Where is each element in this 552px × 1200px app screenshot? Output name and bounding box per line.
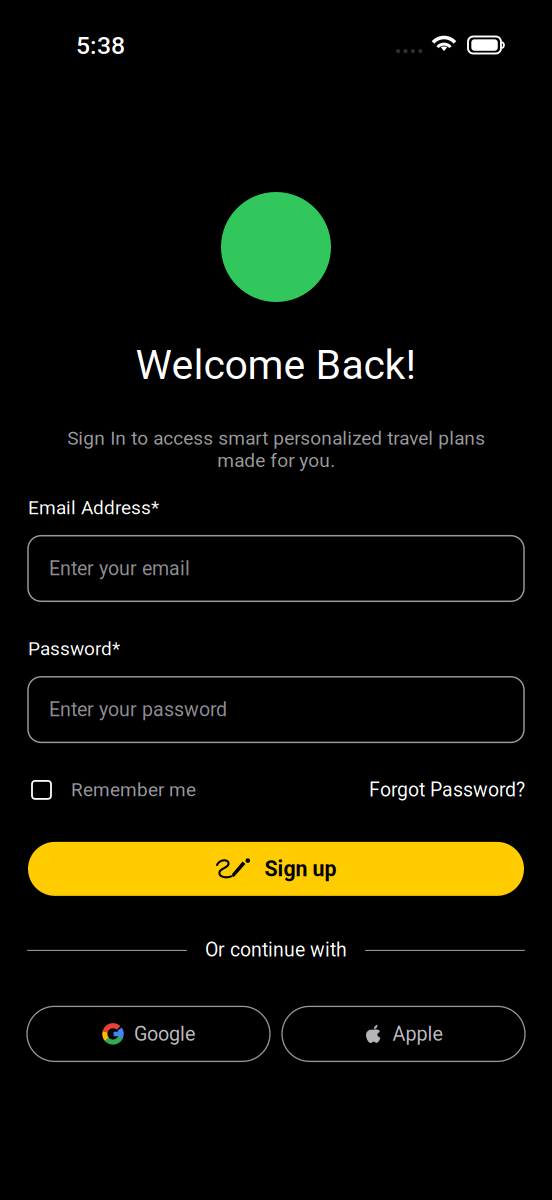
staticText: Password* — [28, 638, 120, 660]
button[interactable]: Google — [27, 1006, 270, 1061]
staticText: Enter your password — [49, 698, 227, 721]
staticText: Remember me — [71, 779, 196, 801]
staticText: Apple — [392, 1022, 442, 1045]
staticText: Enter your email — [49, 557, 190, 580]
button[interactable]: Forgot Password? — [369, 778, 525, 801]
staticText: Google — [134, 1022, 195, 1045]
staticText: 5:38 — [76, 31, 125, 60]
staticText: Forgot Password? — [369, 778, 525, 801]
button[interactable]: Enter your password — [28, 677, 524, 742]
staticText: Sign In to access smart personalized tra… — [67, 427, 485, 472]
button[interactable]: Remember me — [32, 779, 196, 801]
button[interactable]: Apple — [282, 1006, 525, 1061]
staticText: Welcome Back! — [135, 341, 416, 389]
staticText: Sign up — [264, 856, 336, 881]
button[interactable]: Sign up — [28, 842, 524, 896]
staticText: Or continue with — [205, 938, 347, 961]
button[interactable]: Enter your email — [28, 536, 524, 601]
staticText: Email Address* — [28, 496, 159, 519]
